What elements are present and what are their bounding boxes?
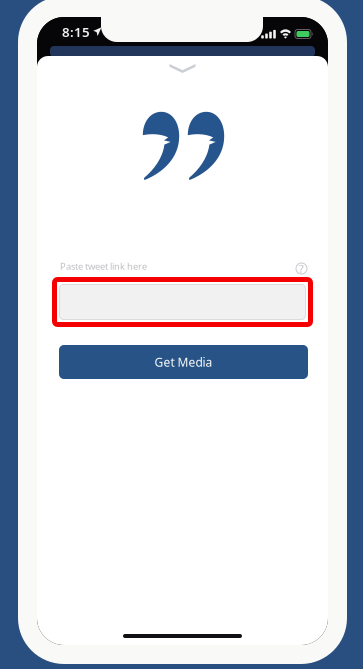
button[interactable]: Get Media (59, 345, 308, 379)
staticText: ? (299, 261, 304, 276)
button[interactable]: Help (295, 262, 308, 275)
staticText: Paste tweet link here (60, 260, 147, 272)
staticText: 8:15 (62, 23, 90, 41)
staticText: Get Media (154, 354, 212, 370)
